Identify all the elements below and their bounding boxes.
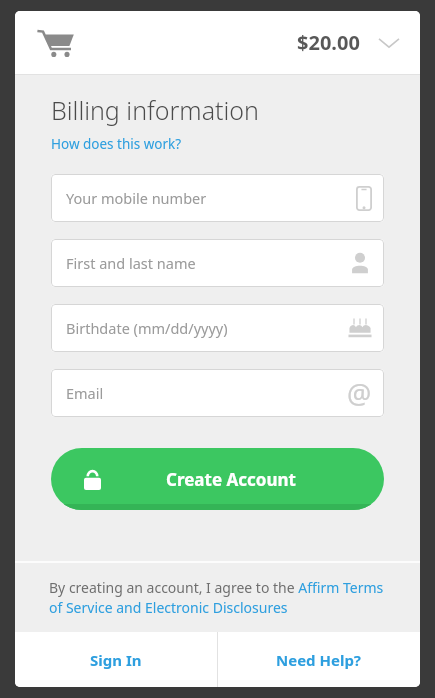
staticText: How does this work? [51, 135, 182, 153]
button[interactable]: Email [51, 369, 384, 417]
staticText: Your mobile number [66, 188, 207, 208]
staticText: First and last name [66, 253, 196, 273]
button[interactable]: Birthdate (mm/dd/yyyy) [51, 304, 384, 352]
staticText: By creating an account, I agree to the A… [49, 578, 390, 618]
button[interactable]: By creating an account, I agree to the A… [49, 578, 390, 618]
staticText: Billing information [51, 93, 259, 127]
staticText: @ [347, 375, 372, 412]
button[interactable]: Create Account [51, 448, 384, 510]
staticText: Create Account [166, 468, 296, 491]
staticText: Birthdate (mm/dd/yyyy) [66, 318, 228, 338]
button[interactable]: Your mobile number [51, 174, 384, 222]
button[interactable]: First and last name [51, 239, 384, 287]
button[interactable]: Expand order details [376, 30, 402, 56]
staticText: Need Help? [276, 650, 362, 670]
staticText: Email [66, 383, 104, 403]
button[interactable]: Need Help? [218, 632, 420, 687]
staticText: $20.00 [297, 29, 360, 56]
button[interactable]: Sign In [15, 632, 217, 687]
staticText: Sign In [90, 650, 142, 670]
button[interactable]: Cart [33, 21, 77, 65]
button[interactable]: How does this work? [51, 135, 182, 153]
